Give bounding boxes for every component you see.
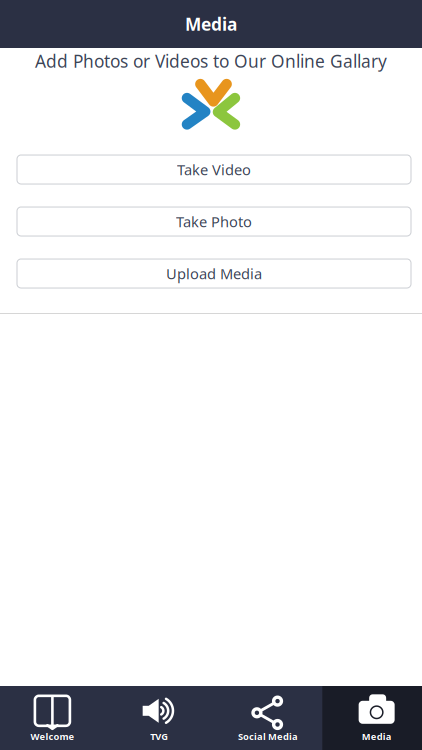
staticText: Media: [185, 12, 237, 35]
button[interactable]: Take Video: [17, 155, 411, 184]
staticText: Upload Media: [166, 264, 262, 283]
button[interactable]: Welcome: [0, 686, 105, 750]
staticText: Social Media: [238, 730, 298, 743]
staticText: Welcome: [30, 730, 74, 743]
staticText: TVG: [150, 730, 168, 743]
staticText: Take Video: [177, 160, 251, 179]
button[interactable]: Take Photo: [17, 207, 411, 236]
button[interactable]: Media: [322, 686, 422, 750]
button[interactable]: Upload Media: [17, 259, 411, 288]
staticText: Media: [362, 730, 392, 743]
staticText: Add Photos or Videos to Our Online Galla…: [35, 49, 387, 72]
button[interactable]: TVG: [105, 686, 214, 750]
staticText: Take Photo: [176, 212, 252, 231]
button[interactable]: Social Media: [214, 686, 322, 750]
